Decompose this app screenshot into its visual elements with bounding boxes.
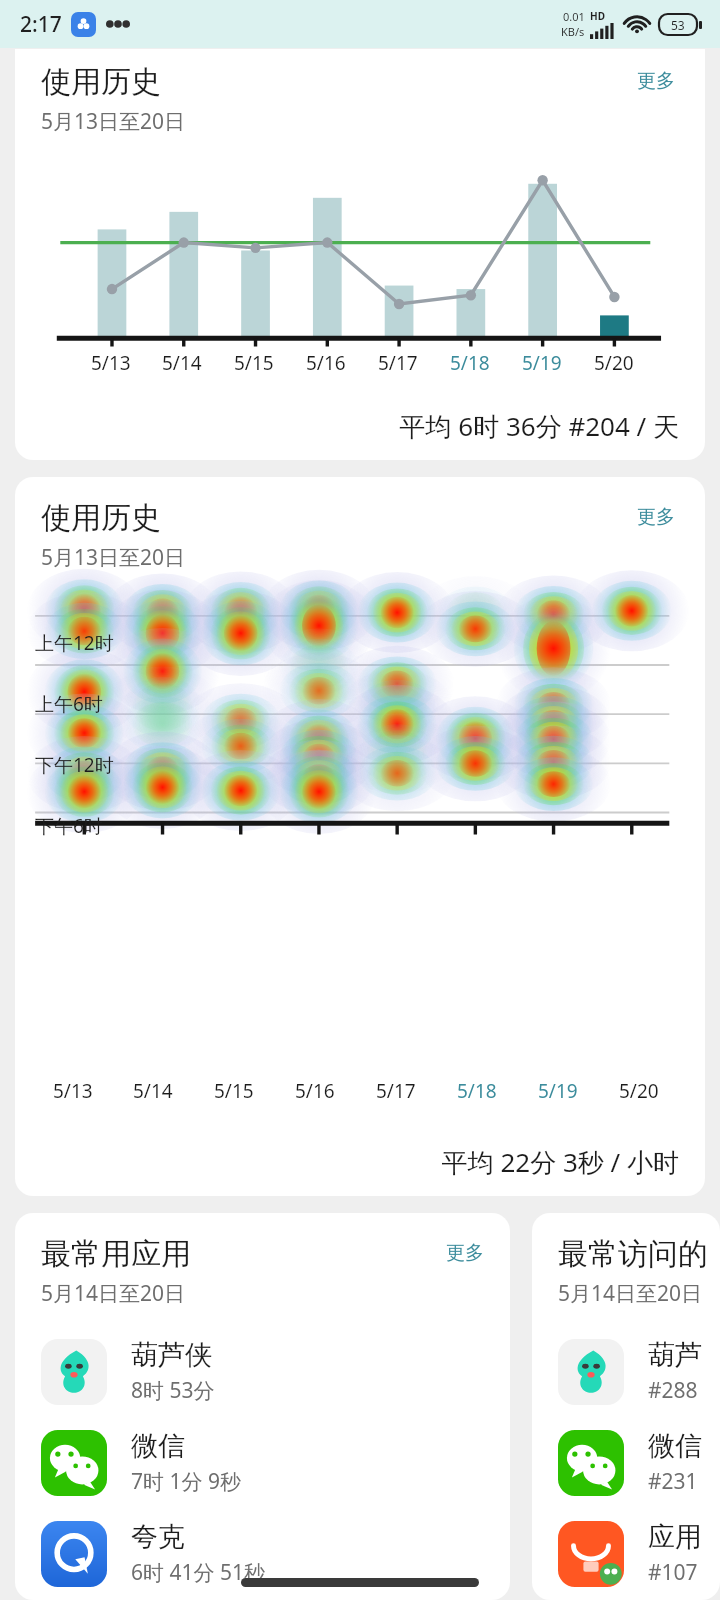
staticText: 5/14	[133, 1078, 173, 1104]
staticText: 5/20	[619, 1078, 659, 1104]
button[interactable]: 应用商店	[532, 1516, 720, 1591]
staticText: 5月14日至20日	[41, 1279, 186, 1308]
staticText: 5/18	[457, 1078, 497, 1104]
button[interactable]: 夸克	[15, 1516, 510, 1591]
staticText: 5/14	[162, 350, 202, 376]
staticText: 53	[671, 17, 685, 33]
button[interactable]: 葫芦侠	[532, 1334, 720, 1409]
button[interactable]: 最常用应用	[15, 1213, 510, 1600]
staticText: 0.01	[563, 9, 585, 24]
staticText: 更多	[446, 1241, 484, 1265]
staticText: #231	[648, 1467, 698, 1496]
staticText: 2:17	[20, 10, 62, 39]
button[interactable]: 微信	[15, 1425, 510, 1500]
staticText: 上午12时	[35, 630, 114, 656]
staticText: 最常访问的应用	[558, 1235, 720, 1273]
staticText: 6时 41分 51秒	[131, 1558, 265, 1587]
button[interactable]: 更多	[442, 1235, 488, 1271]
staticText: 5/13	[53, 1078, 93, 1104]
staticText: #288	[648, 1376, 698, 1405]
staticText: 使用历史	[41, 63, 161, 101]
staticText: 5/18	[450, 350, 490, 376]
staticText: 5月14日至20日	[558, 1279, 703, 1308]
staticText: 葫芦侠	[131, 1338, 212, 1372]
staticText: #107	[648, 1558, 698, 1587]
staticText: 5/13	[91, 350, 131, 376]
staticText: 7时 1分 9秒	[131, 1467, 241, 1496]
staticText: 夸克	[131, 1520, 185, 1554]
button[interactable]: 最常访问的应用	[532, 1213, 720, 1600]
staticText: 葫芦侠	[648, 1338, 720, 1372]
staticText: HD	[590, 9, 605, 23]
staticText: 更多	[637, 505, 675, 529]
staticText: 上午6时	[35, 691, 103, 717]
staticText: 更多	[637, 69, 675, 93]
staticText: 最常用应用	[41, 1235, 191, 1273]
button[interactable]: 葫芦侠	[15, 1334, 510, 1409]
button[interactable]: 更多	[633, 63, 679, 99]
button[interactable]: 使用历史	[15, 49, 705, 460]
staticText: 平均 6时 36分 #204 / 天	[15, 408, 679, 444]
staticText: 5/19	[538, 1078, 578, 1104]
staticText: 5/16	[306, 350, 346, 376]
staticText: 下午6时	[35, 813, 103, 839]
button[interactable]: 微信	[532, 1425, 720, 1500]
staticText: 5/15	[234, 350, 274, 376]
staticText: 5月13日至20日	[41, 107, 186, 136]
staticText: 5/15	[214, 1078, 254, 1104]
staticText: 5/16	[295, 1078, 335, 1104]
staticText: 5月13日至20日	[41, 543, 186, 572]
staticText: 微信	[648, 1429, 702, 1463]
staticText: 5/20	[594, 350, 634, 376]
staticText: 使用历史	[41, 499, 161, 537]
staticText: 微信	[131, 1429, 185, 1463]
staticText: 8时 53分	[131, 1376, 215, 1405]
staticText: 平均 22分 3秒 / 小时	[15, 1144, 679, 1180]
staticText: 5/17	[378, 350, 418, 376]
staticText: 应用商店	[648, 1520, 720, 1554]
staticText: 下午12时	[35, 752, 114, 778]
staticText: 5/19	[522, 350, 562, 376]
button[interactable]: 更多	[633, 499, 679, 535]
staticText: KB/s	[561, 24, 585, 39]
button[interactable]: 使用历史	[15, 477, 705, 1196]
staticText: 5/17	[376, 1078, 416, 1104]
